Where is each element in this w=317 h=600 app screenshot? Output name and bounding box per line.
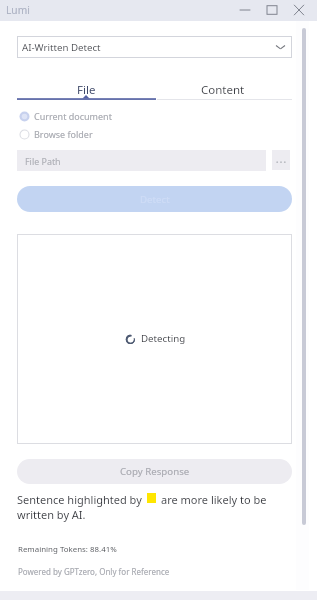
button[interactable]: Current document: [19, 109, 112, 123]
button[interactable]: Minimize: [232, 0, 258, 20]
staticText: File Path: [25, 155, 61, 167]
button[interactable]: Copy Response: [17, 459, 292, 484]
staticText: Browse folder: [34, 128, 93, 140]
button[interactable]: File Path: [17, 150, 266, 171]
staticText: Detecting: [141, 332, 186, 345]
button[interactable]: File: [17, 82, 156, 99]
button[interactable]: Detect: [17, 186, 292, 212]
staticText: Lumi: [6, 3, 30, 17]
staticText: written by AI.: [17, 507, 86, 522]
staticText: Content: [201, 82, 245, 98]
staticText: are more likely to be: [161, 492, 267, 507]
staticText: AI-Written Detect: [22, 41, 101, 54]
staticText: File: [77, 82, 96, 98]
staticText: Powered by GPTzero, Only for Reference: [18, 566, 170, 577]
button[interactable]: Browse for file: [272, 150, 290, 170]
staticText: Current document: [34, 110, 112, 122]
button[interactable]: Content: [156, 82, 290, 99]
staticText: Copy Response: [120, 465, 190, 478]
button[interactable]: AI-Written Detect: [17, 36, 292, 58]
staticText: Remaining Tokens: 88.41%: [18, 544, 117, 555]
button[interactable]: Browse folder: [19, 127, 93, 141]
staticText: Sentence highlighted by: [17, 492, 142, 507]
button[interactable]: Close: [286, 0, 312, 20]
staticText: Detect: [140, 193, 170, 206]
button[interactable]: Maximize: [259, 0, 285, 20]
